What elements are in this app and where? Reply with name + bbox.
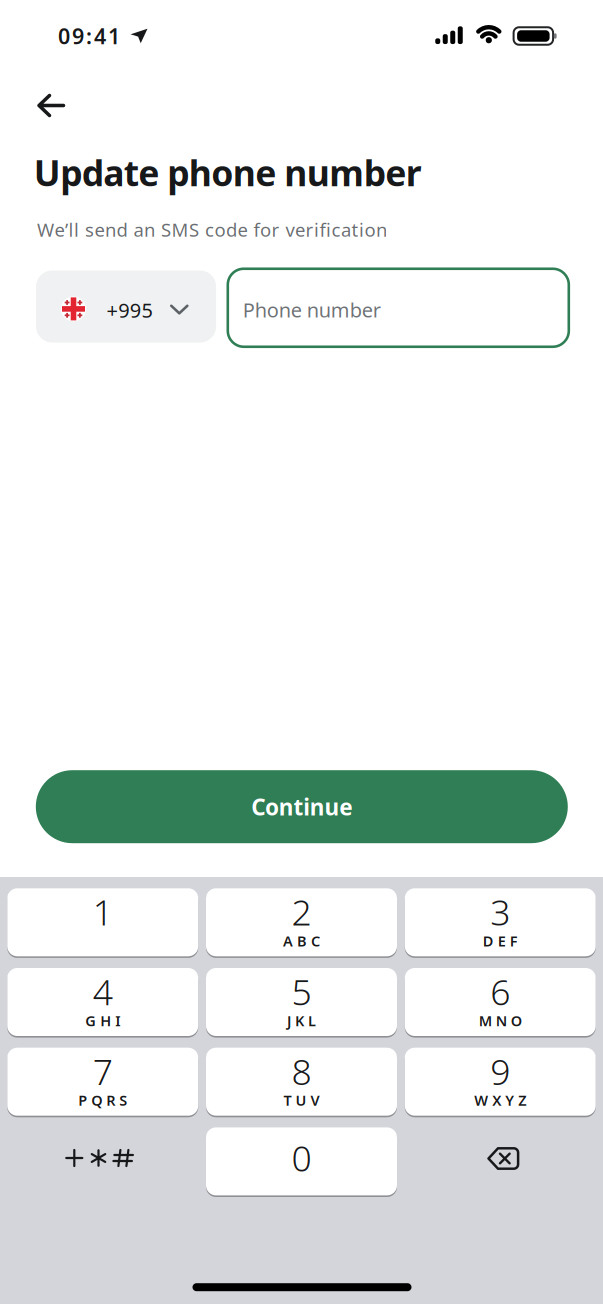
staticText: DEF <box>483 931 518 951</box>
staticText: 6 <box>490 967 510 1016</box>
button[interactable]: 1 <box>7 888 198 956</box>
button[interactable]: 6 <box>405 968 596 1036</box>
button[interactable]: 5 <box>206 968 397 1036</box>
button[interactable]: 4 <box>7 968 198 1036</box>
button[interactable]: Continue <box>36 770 568 843</box>
button[interactable]: Phone number <box>228 269 569 347</box>
staticText: MNO <box>479 1011 522 1030</box>
staticText: GHI <box>85 1011 120 1030</box>
button[interactable]: 3 <box>405 888 596 956</box>
staticText: 8 <box>291 1047 311 1095</box>
button[interactable]: Back <box>29 85 73 125</box>
staticText: TUV <box>283 1090 319 1110</box>
button[interactable]: Symbols <box>3 1124 194 1192</box>
staticText: 7 <box>93 1047 113 1095</box>
staticText: +995 <box>107 296 152 324</box>
button[interactable]: Delete <box>408 1124 599 1192</box>
staticText: 4 <box>93 967 113 1016</box>
staticText: 0 <box>291 1133 311 1182</box>
staticText: 09:41 <box>58 21 120 51</box>
button[interactable]: 9 <box>405 1048 596 1116</box>
button[interactable]: 7 <box>7 1048 198 1116</box>
staticText: 3 <box>490 888 510 936</box>
staticText: We’ll send an SMS code for verification <box>37 217 387 242</box>
staticText: Phone number <box>243 296 381 323</box>
staticText: 9 <box>490 1047 510 1095</box>
staticText: 2 <box>291 888 311 936</box>
staticText: 1 <box>93 888 113 936</box>
button[interactable]: 2 <box>206 888 397 956</box>
staticText: ABC <box>283 931 320 951</box>
button[interactable]: Country code +995 <box>36 270 216 342</box>
staticText: Continue <box>251 791 352 822</box>
button[interactable]: 0 <box>206 1127 397 1195</box>
staticText: PQRS <box>78 1090 127 1110</box>
button[interactable]: 8 <box>206 1048 397 1116</box>
staticText: JKL <box>287 1011 316 1030</box>
staticText: WXYZ <box>474 1090 526 1110</box>
staticText: 5 <box>291 967 311 1016</box>
staticText: Update phone number <box>34 148 422 197</box>
